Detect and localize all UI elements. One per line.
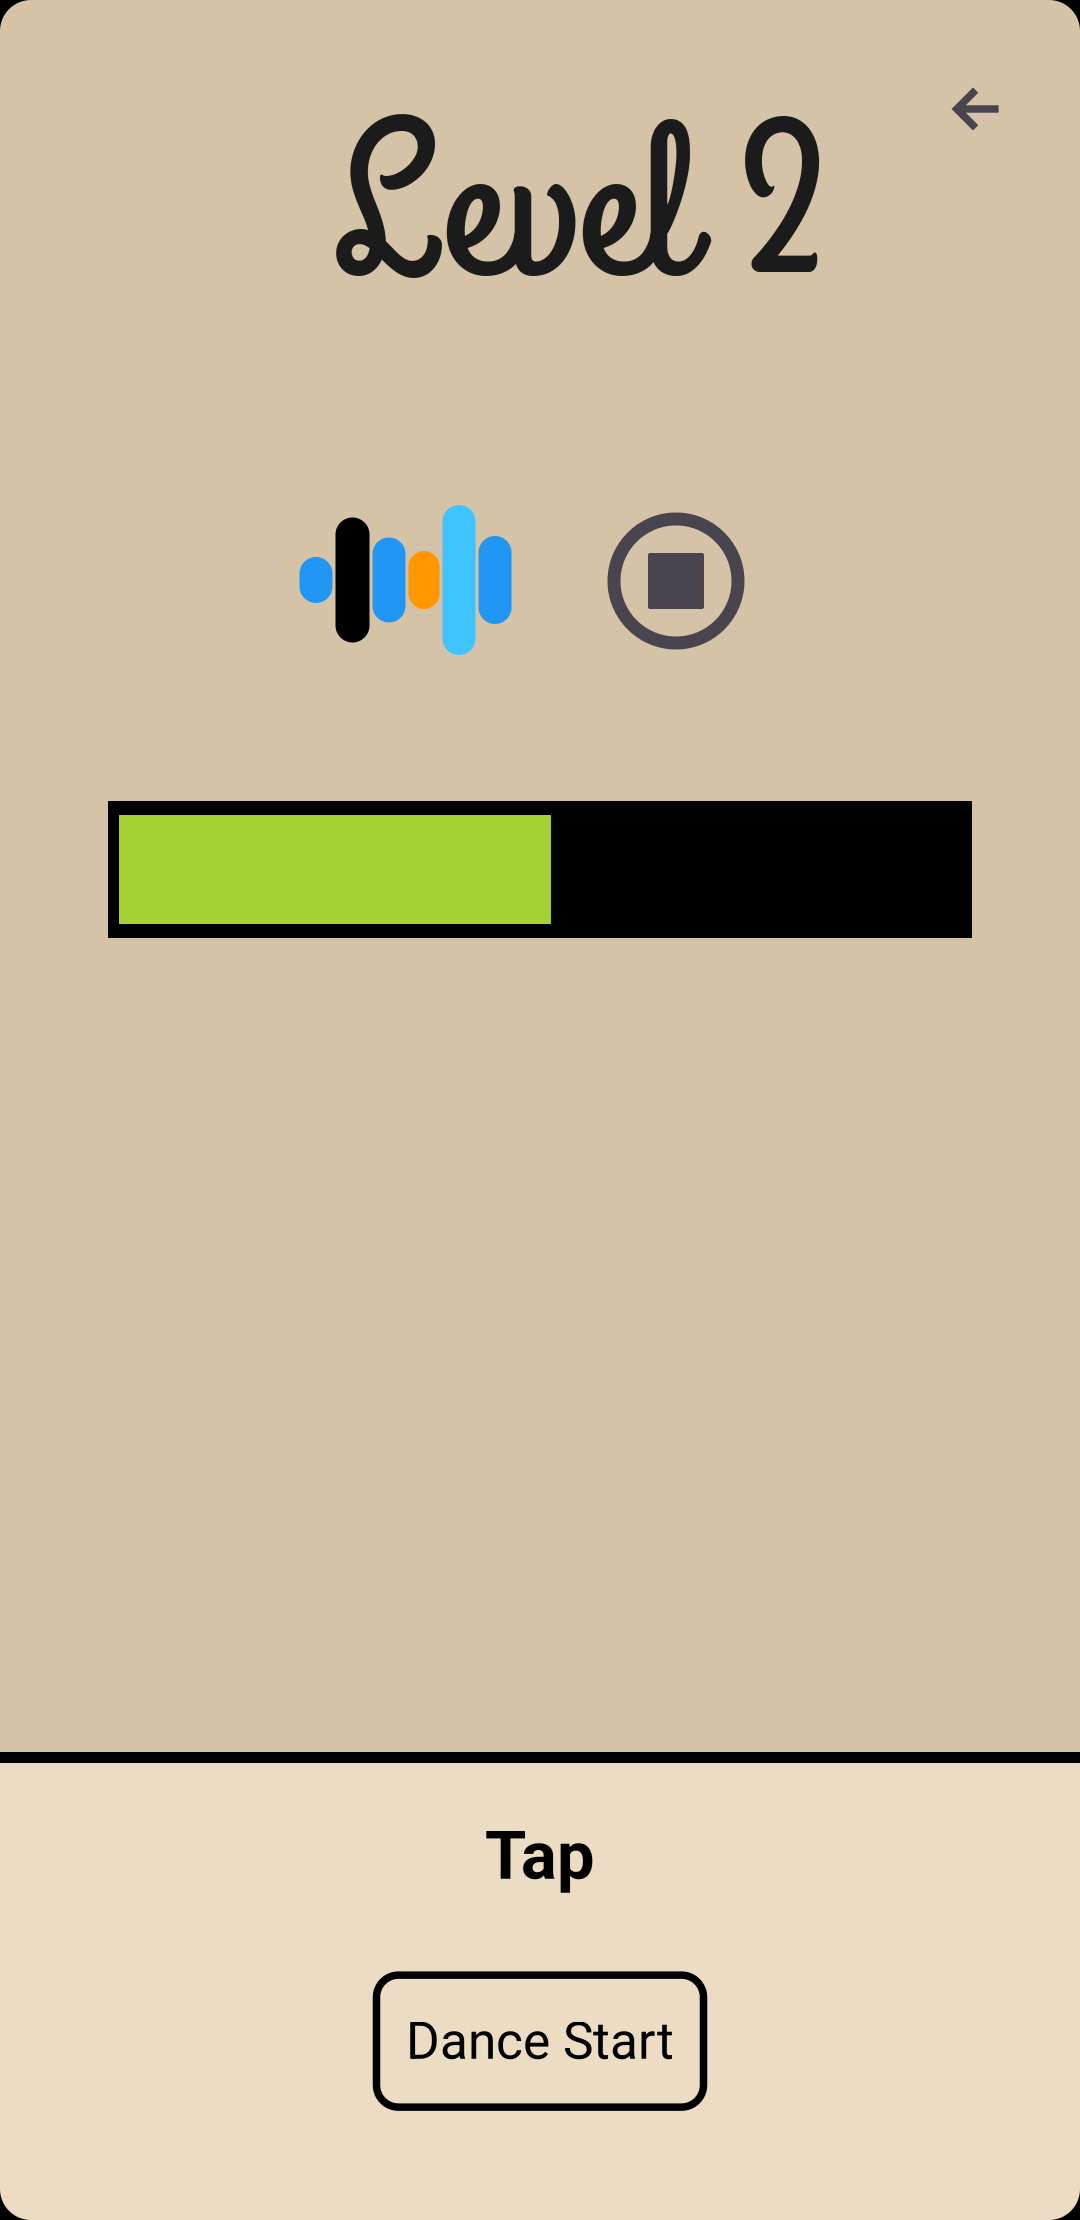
button[interactable]: Dance Start <box>376 1975 703 2107</box>
button[interactable]: Stop <box>601 506 751 656</box>
staticText: Tap <box>485 1817 595 1895</box>
button[interactable]: Back <box>954 86 1000 132</box>
staticText: Dance Start <box>406 2011 674 2071</box>
staticText: Level 2 <box>332 63 826 360</box>
